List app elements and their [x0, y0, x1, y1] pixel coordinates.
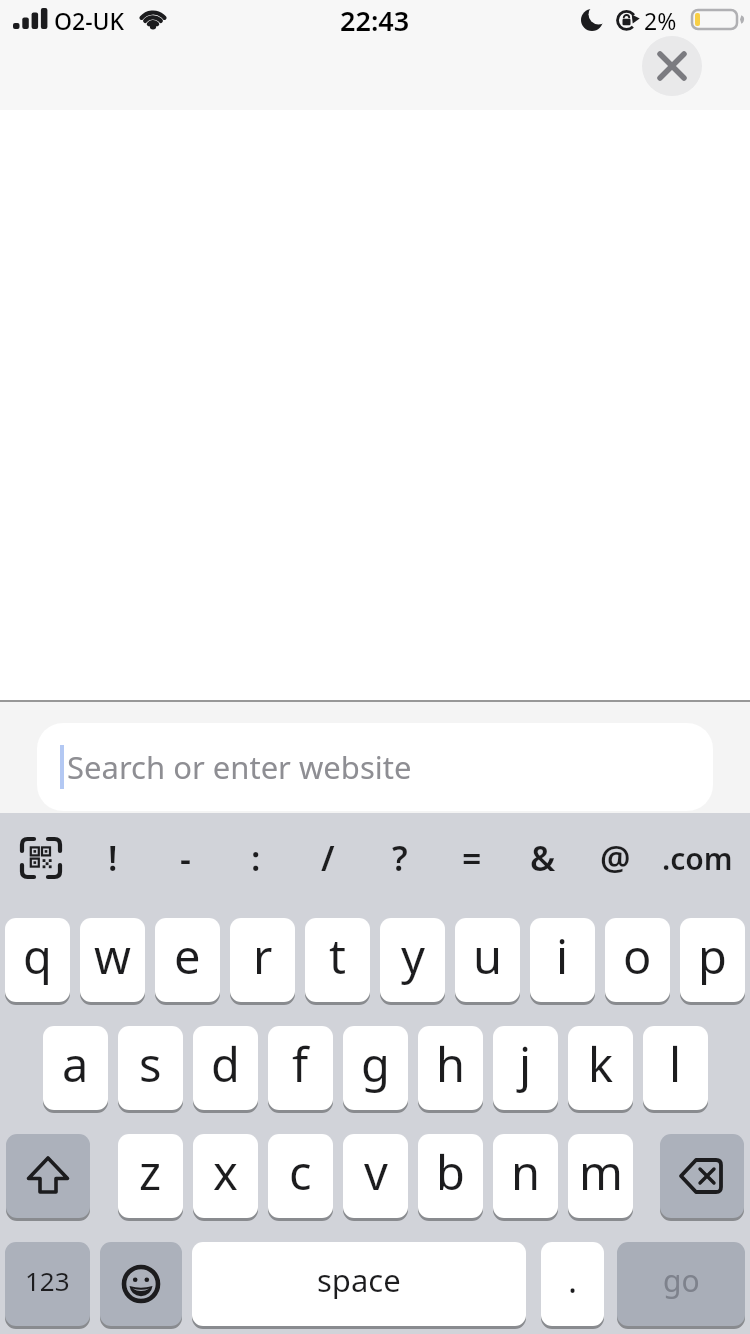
button[interactable]: c — [268, 1134, 333, 1218]
staticText: x — [213, 1140, 238, 1204]
button[interactable]: ? — [375, 833, 425, 883]
button[interactable]: k — [568, 1026, 633, 1110]
button[interactable]: space — [192, 1242, 526, 1326]
staticText: @ — [600, 835, 631, 881]
button[interactable]: h — [418, 1026, 483, 1110]
staticText: = — [462, 835, 482, 881]
button[interactable] — [642, 36, 702, 96]
button[interactable]: o — [605, 918, 670, 1002]
button[interactable]: g — [343, 1026, 408, 1110]
staticText: e — [174, 924, 201, 988]
button[interactable]: y — [380, 918, 445, 1002]
staticText: Search or enter website — [67, 746, 412, 788]
staticText: . — [568, 1257, 578, 1303]
button[interactable]: w — [80, 918, 145, 1002]
button[interactable] — [660, 1134, 744, 1218]
button[interactable] — [100, 1242, 182, 1326]
button[interactable]: i — [530, 918, 595, 1002]
button[interactable]: n — [493, 1134, 558, 1218]
staticText: s — [139, 1032, 162, 1096]
button[interactable]: ! — [88, 833, 138, 883]
staticText: & — [530, 835, 556, 881]
staticText: i — [556, 924, 569, 988]
staticText: g — [361, 1032, 390, 1096]
staticText: b — [436, 1140, 465, 1204]
staticText: y — [401, 924, 425, 988]
button[interactable]: e — [155, 918, 220, 1002]
staticText: m — [579, 1140, 623, 1204]
button[interactable]: z — [118, 1134, 183, 1218]
staticText: r — [253, 924, 273, 988]
staticText: u — [473, 924, 503, 988]
staticText: j — [519, 1032, 532, 1096]
button[interactable]: Search or enter website — [37, 723, 713, 811]
staticText: ! — [108, 835, 118, 881]
staticText: p — [698, 924, 727, 988]
button[interactable]: j — [493, 1026, 558, 1110]
button[interactable]: r — [230, 918, 295, 1002]
button[interactable]: u — [455, 918, 520, 1002]
button[interactable]: p — [680, 918, 745, 1002]
staticText: k — [588, 1032, 614, 1096]
staticText: go — [663, 1260, 700, 1301]
button[interactable]: x — [193, 1134, 258, 1218]
button[interactable]: s — [118, 1026, 183, 1110]
button[interactable]: & — [518, 833, 568, 883]
staticText: 2% — [644, 5, 677, 36]
staticText: l — [669, 1032, 682, 1096]
staticText: c — [289, 1140, 312, 1204]
button[interactable]: = — [447, 833, 497, 883]
staticText: - — [180, 835, 191, 881]
button[interactable]: : — [231, 833, 281, 883]
staticText: v — [364, 1140, 388, 1204]
button[interactable]: m — [568, 1134, 633, 1218]
staticText: a — [62, 1032, 89, 1096]
button[interactable]: a — [43, 1026, 108, 1110]
staticText: O2-UK — [54, 5, 125, 36]
button[interactable]: - — [160, 833, 210, 883]
button[interactable]: d — [193, 1026, 258, 1110]
staticText: h — [436, 1032, 466, 1096]
staticText: w — [94, 924, 131, 988]
button[interactable]: q — [5, 918, 70, 1002]
staticText: space — [317, 1259, 401, 1301]
button[interactable]: l — [643, 1026, 708, 1110]
staticText: 123 — [25, 1263, 70, 1298]
staticText: f — [292, 1032, 309, 1096]
staticText: / — [321, 835, 335, 881]
button[interactable] — [6, 1134, 90, 1218]
button[interactable]: b — [418, 1134, 483, 1218]
staticText: d — [211, 1032, 240, 1096]
button[interactable]: go — [617, 1242, 745, 1326]
button[interactable]: .com — [652, 833, 742, 883]
staticText: 22:43 — [340, 2, 410, 39]
button[interactable]: . — [541, 1242, 604, 1326]
button[interactable]: f — [268, 1026, 333, 1110]
staticText: o — [623, 924, 652, 988]
button[interactable]: v — [343, 1134, 408, 1218]
staticText: t — [329, 924, 346, 988]
button[interactable]: t — [305, 918, 370, 1002]
staticText: n — [511, 1140, 541, 1204]
button[interactable]: @ — [590, 833, 640, 883]
button[interactable]: / — [303, 833, 353, 883]
staticText: z — [139, 1140, 162, 1204]
button[interactable] — [16, 833, 66, 883]
button[interactable]: 123 — [5, 1242, 90, 1326]
staticText: : — [251, 835, 261, 881]
staticText: q — [23, 924, 52, 988]
staticText: ? — [392, 835, 408, 881]
staticText: .com — [662, 838, 733, 879]
